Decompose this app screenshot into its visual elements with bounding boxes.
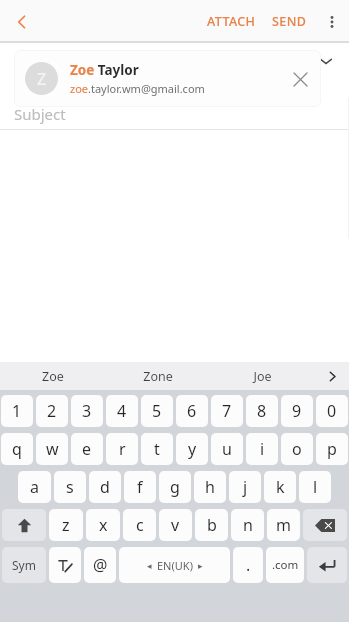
button[interactable]: Backspace [303, 509, 347, 541]
button[interactable]: 3 [71, 395, 103, 427]
staticText: 5 [152, 400, 162, 422]
button[interactable]: Expand [309, 44, 343, 78]
button[interactable]: 2 [36, 395, 68, 427]
button[interactable]: j [229, 471, 261, 503]
button[interactable]: 1 [1, 395, 33, 427]
staticText: 6 [187, 400, 197, 422]
staticText: ◂ [147, 561, 152, 571]
button[interactable]: p [316, 433, 348, 465]
button[interactable]: Back [0, 0, 44, 43]
staticText: ▸ [198, 561, 203, 571]
button[interactable]: ATTACH [199, 3, 264, 40]
button[interactable]: Zone [105, 362, 210, 390]
button[interactable]: q [1, 433, 33, 465]
button[interactable]: x [86, 509, 120, 541]
button[interactable]: . [233, 547, 263, 583]
button[interactable]: h [194, 471, 226, 503]
staticText: EN(UK) [157, 558, 193, 573]
staticText: j [243, 476, 248, 498]
staticText: Joe [253, 368, 272, 385]
button[interactable]: b [195, 509, 228, 541]
staticText: o [292, 438, 302, 460]
staticText: Z [37, 68, 47, 90]
staticText: h [205, 476, 215, 498]
staticText: 4 [117, 400, 127, 422]
button[interactable]: u [211, 433, 243, 465]
button[interactable]: Shift [2, 509, 46, 541]
button[interactable]: v [159, 509, 192, 541]
staticText: l [313, 476, 318, 498]
button[interactable]: f [124, 471, 156, 503]
button[interactable]: 0 [316, 395, 348, 427]
staticText: Subject [14, 104, 66, 124]
staticText: t [154, 438, 160, 460]
button[interactable]: k [264, 471, 296, 503]
button[interactable]: i [246, 433, 278, 465]
staticText: v [171, 514, 180, 536]
staticText: 7 [222, 400, 232, 422]
button[interactable]: Enter [307, 547, 347, 583]
staticText: m [276, 514, 291, 536]
button[interactable]: o [281, 433, 313, 465]
button[interactable]: More options [315, 5, 349, 39]
button[interactable]: Zoe [50, 52, 74, 70]
button[interactable]: More suggestions [315, 362, 349, 390]
staticText: k [276, 476, 285, 498]
button[interactable]: n [231, 509, 264, 541]
staticText: p [327, 438, 337, 460]
staticText: . [246, 554, 251, 576]
button[interactable]: t [141, 433, 173, 465]
button[interactable]: e [71, 433, 103, 465]
button[interactable]: d [89, 471, 121, 503]
button[interactable]: c [123, 509, 156, 541]
staticText: q [12, 438, 22, 460]
button[interactable]: y [176, 433, 208, 465]
button[interactable]: Handwriting [49, 547, 81, 583]
button[interactable]: 5 [141, 395, 173, 427]
staticText: i [260, 438, 265, 460]
button[interactable]: Z [14, 50, 321, 107]
button[interactable]: @ [84, 547, 116, 583]
button[interactable]: .com [266, 547, 304, 583]
staticText: c [136, 514, 144, 536]
staticText: s [66, 476, 74, 498]
button[interactable]: 9 [281, 395, 313, 427]
button[interactable]: s [54, 471, 86, 503]
button[interactable]: l [299, 471, 331, 503]
button[interactable]: z [49, 509, 83, 541]
staticText: Zoe Taylor [70, 61, 139, 79]
staticText: r [119, 438, 126, 460]
staticText: Zone [143, 368, 173, 385]
staticText: n [243, 514, 253, 536]
staticText: 3 [82, 400, 92, 422]
staticText: u [222, 438, 232, 460]
button[interactable]: 8 [246, 395, 278, 427]
staticText: 1 [12, 400, 22, 422]
button[interactable]: r [106, 433, 138, 465]
button[interactable]: Add recipient [279, 46, 309, 76]
button[interactable]: SEND [264, 3, 315, 40]
staticText: Sym [12, 557, 36, 573]
button[interactable]: g [159, 471, 191, 503]
button[interactable]: 6 [176, 395, 208, 427]
staticText: g [170, 476, 180, 498]
staticText: w [46, 438, 59, 460]
staticText: .com [272, 557, 299, 573]
staticText: @ [93, 554, 108, 576]
button[interactable]: 4 [106, 395, 138, 427]
button[interactable]: Zoe [0, 362, 105, 390]
button[interactable]: w [36, 433, 68, 465]
button[interactable]: m [267, 509, 300, 541]
staticText: 9 [292, 400, 302, 422]
button[interactable]: 7 [211, 395, 243, 427]
staticText: a [30, 476, 39, 498]
staticText: b [207, 514, 217, 536]
button[interactable]: Remove recipient [283, 62, 317, 96]
button[interactable]: Joe [210, 362, 315, 390]
staticText: 2 [47, 400, 57, 422]
staticText: d [100, 476, 110, 498]
button[interactable]: a [18, 471, 51, 503]
button[interactable]: Sym [2, 547, 46, 583]
button[interactable]: Space [119, 547, 230, 583]
